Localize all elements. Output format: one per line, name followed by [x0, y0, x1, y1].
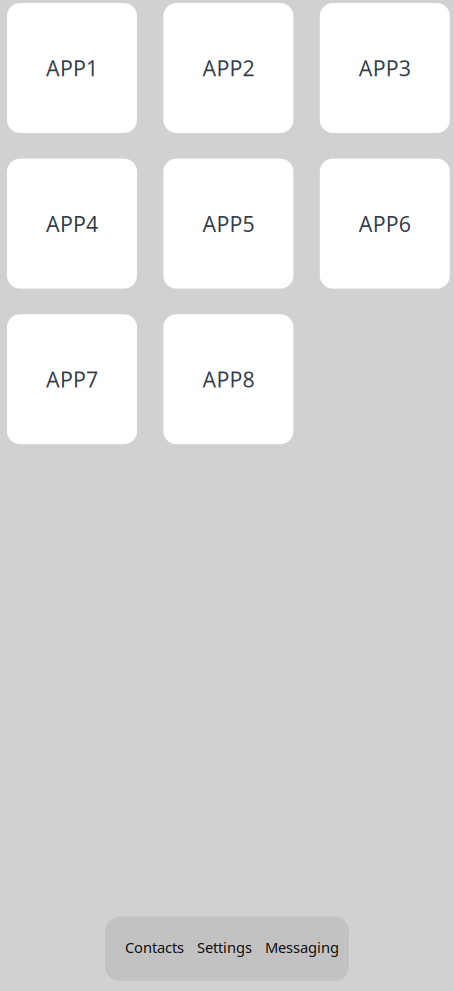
button[interactable]: APP4 — [7, 159, 137, 289]
staticText: Settings — [197, 937, 252, 957]
staticText: APP5 — [202, 209, 254, 238]
staticText: APP1 — [46, 54, 98, 82]
button[interactable]: APP8 — [163, 314, 293, 444]
button[interactable]: Messaging — [265, 916, 339, 981]
button[interactable]: APP6 — [320, 159, 450, 289]
button[interactable]: APP5 — [163, 159, 293, 289]
staticText: APP7 — [46, 365, 98, 393]
staticText: Messaging — [265, 937, 339, 957]
staticText: APP8 — [202, 365, 254, 393]
button[interactable]: Contacts — [125, 916, 184, 981]
staticText: APP2 — [202, 54, 254, 82]
button[interactable]: APP2 — [163, 3, 293, 133]
button[interactable]: APP3 — [320, 3, 450, 133]
staticText: Contacts — [125, 937, 184, 957]
staticText: APP6 — [359, 209, 411, 238]
staticText: APP4 — [46, 209, 98, 238]
staticText: APP3 — [359, 54, 411, 82]
button[interactable]: APP7 — [7, 314, 137, 444]
button[interactable]: Settings — [197, 916, 252, 981]
button[interactable]: APP1 — [7, 3, 137, 133]
